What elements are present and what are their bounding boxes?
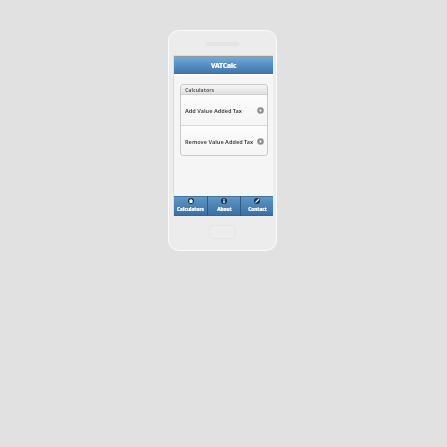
button[interactable]: About xyxy=(208,196,240,216)
staticText: Add Value Added Tax xyxy=(185,107,243,114)
staticText: Calculators xyxy=(177,206,204,213)
staticText: VATCalc xyxy=(211,61,237,70)
button[interactable]: Remove Value Added Tax xyxy=(180,126,268,156)
staticText: About xyxy=(217,206,232,213)
button[interactable]: Add Value Added Tax xyxy=(180,95,268,125)
other: Open xyxy=(257,107,264,114)
button[interactable]: Contact xyxy=(241,196,273,216)
staticText: Calculators xyxy=(185,86,215,93)
button[interactable]: Calculators xyxy=(174,196,207,216)
button[interactable]: VATCalc xyxy=(174,56,273,74)
other: Open xyxy=(257,138,264,145)
staticText: Contact xyxy=(248,206,267,213)
staticText: Remove Value Added Tax xyxy=(185,138,254,145)
